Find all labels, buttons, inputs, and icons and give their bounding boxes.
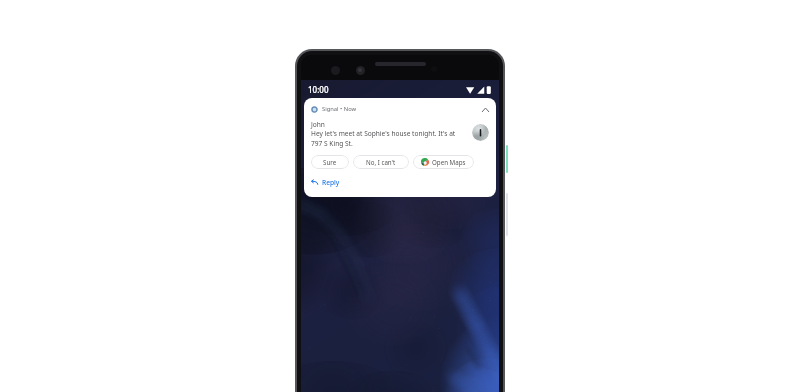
staticText: Hey let's meet at Sophie's house tonight…: [311, 129, 456, 148]
button[interactable]: No, I can't: [353, 155, 409, 169]
button[interactable]: Reply: [310, 177, 341, 188]
button[interactable]: Sure: [311, 155, 349, 169]
staticText: Signal • Now: [322, 105, 357, 113]
staticText: No, I can't: [366, 158, 396, 166]
button[interactable]: Open Maps: [413, 155, 474, 169]
staticText: John: [311, 120, 325, 129]
button[interactable]: Collapse notification: [480, 104, 491, 115]
staticText: Open Maps: [432, 158, 466, 166]
staticText: Reply: [322, 178, 340, 187]
staticText: Sure: [323, 158, 337, 166]
staticText: 10:00: [308, 84, 329, 95]
